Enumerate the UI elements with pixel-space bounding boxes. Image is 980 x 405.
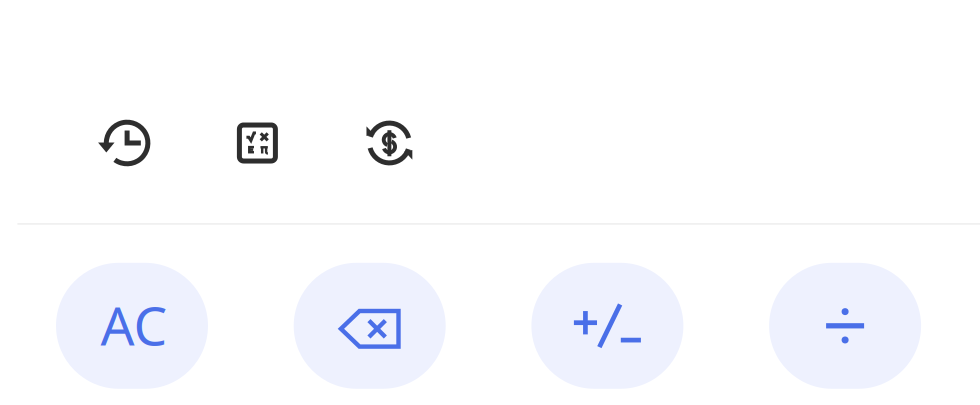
button[interactable]: AC	[56, 263, 208, 389]
button[interactable]: Scientific calculator	[223, 109, 291, 177]
staticText: AC	[100, 289, 167, 360]
button[interactable]: Backspace	[294, 263, 446, 389]
button[interactable]: History	[89, 109, 157, 177]
button[interactable]: Divide	[769, 263, 921, 389]
button[interactable]: Currency converter	[355, 109, 423, 177]
button[interactable]: Toggle sign	[531, 263, 683, 389]
